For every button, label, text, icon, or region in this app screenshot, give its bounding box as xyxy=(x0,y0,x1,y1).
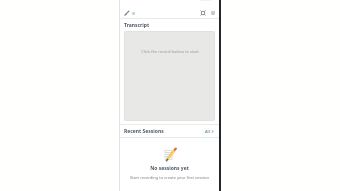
button[interactable]: Settings xyxy=(199,9,207,17)
button[interactable]: Options xyxy=(199,0,213,1)
staticText: Start recording to create your first ses… xyxy=(130,175,209,180)
staticText: Click the record button to start xyxy=(141,49,199,54)
button[interactable] xyxy=(123,9,136,17)
staticText: Recent Sessions xyxy=(124,128,164,135)
staticText: No sessions yet xyxy=(150,165,189,172)
staticText: All xyxy=(205,129,210,134)
button[interactable]: More options xyxy=(210,10,216,16)
staticText: Transcript xyxy=(124,22,150,29)
button[interactable]: All xyxy=(204,129,215,134)
